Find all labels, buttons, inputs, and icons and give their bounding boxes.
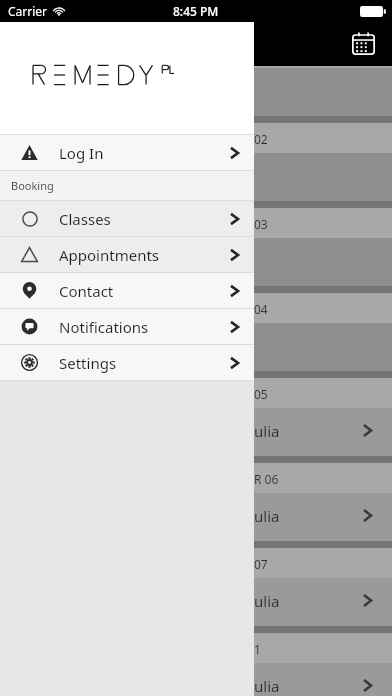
staticText: Classes	[59, 209, 111, 229]
staticText: Notifications	[59, 317, 149, 337]
button[interactable]: Notifications	[0, 309, 254, 344]
staticText: ulia	[254, 591, 280, 611]
staticText: 07	[254, 556, 268, 572]
staticText: Log In	[59, 143, 104, 163]
button[interactable]: Settings	[0, 345, 254, 380]
staticText: Appointments	[59, 245, 160, 265]
staticText: 04	[254, 301, 268, 317]
staticText: Booking	[11, 178, 54, 193]
staticText: ulia	[254, 676, 280, 696]
staticText: R 06	[254, 471, 279, 487]
staticText: 1	[254, 641, 261, 657]
staticText: 05	[254, 386, 268, 402]
staticText: Settings	[59, 353, 117, 373]
staticText: Contact	[59, 281, 114, 301]
button[interactable]: Calendar	[346, 26, 380, 60]
button[interactable]: Appointments	[0, 237, 254, 272]
staticText: ulia	[254, 506, 280, 526]
staticText: 02	[254, 131, 268, 147]
button[interactable]: Classes	[0, 201, 254, 236]
staticText: Carrier	[8, 3, 48, 19]
staticText: ulia	[254, 421, 280, 441]
staticText: 8:45 PM	[173, 3, 219, 19]
button[interactable]: Contact	[0, 273, 254, 308]
staticText: 03	[254, 216, 268, 232]
button[interactable]: Log In	[0, 135, 254, 170]
